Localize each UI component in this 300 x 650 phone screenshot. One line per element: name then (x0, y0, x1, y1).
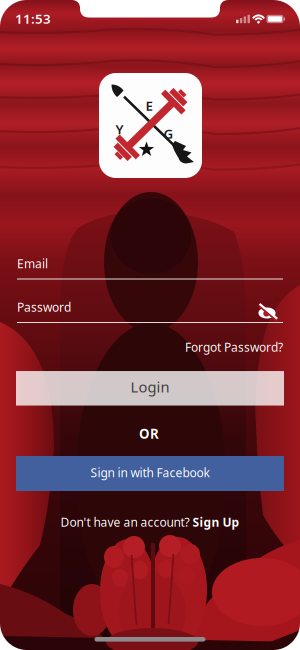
button[interactable]: Sign in with Facebook (16, 456, 284, 491)
button[interactable]: Don't have an account? (60, 514, 239, 530)
button[interactable]: Login (16, 371, 284, 406)
staticText: G (163, 125, 173, 142)
button[interactable]: Password (17, 300, 283, 323)
button[interactable]: Show password (257, 302, 277, 322)
staticText: Login (130, 377, 169, 397)
button[interactable]: Forgot Password? (17, 340, 283, 354)
staticText: 11:53 (15, 10, 51, 27)
staticText: Forgot Password? (185, 339, 283, 355)
button[interactable]: Email (17, 257, 283, 279)
staticText: Don't have an account? (60, 514, 189, 530)
staticText: E (145, 97, 152, 114)
staticText: OR (139, 425, 159, 442)
staticText: Y (115, 120, 123, 138)
staticText: Email (17, 255, 48, 271)
staticText: Sign in with Facebook (90, 464, 209, 480)
staticText: Sign Up (192, 514, 239, 530)
staticText: Password (17, 299, 71, 315)
